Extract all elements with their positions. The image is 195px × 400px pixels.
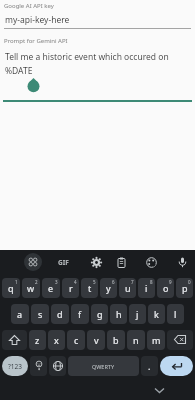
button[interactable]: c	[67, 330, 85, 350]
button[interactable]: x	[48, 330, 65, 350]
staticText: d	[57, 308, 63, 320]
staticText: h	[116, 308, 122, 320]
staticText: g	[97, 308, 103, 320]
staticText: o	[163, 282, 169, 294]
staticText: c	[74, 334, 79, 346]
staticText: 7	[131, 279, 134, 285]
staticText: 8	[150, 279, 153, 285]
button[interactable]: k	[148, 304, 165, 324]
staticText: y	[106, 282, 111, 294]
button[interactable]: w	[22, 278, 40, 298]
staticText: 0	[188, 279, 191, 285]
staticText: .	[148, 360, 151, 372]
staticText: 2	[35, 279, 38, 285]
button[interactable]	[49, 356, 66, 376]
button[interactable]: y	[100, 278, 117, 298]
staticText: k	[154, 308, 159, 320]
button[interactable]: my-api-key-here	[5, 14, 191, 26]
staticText: n	[133, 334, 139, 346]
button[interactable]: l	[167, 304, 184, 324]
button[interactable]: g	[91, 304, 108, 324]
staticText: i	[145, 282, 148, 294]
button[interactable]: r	[62, 278, 79, 298]
staticText: l	[174, 308, 177, 320]
button[interactable]	[154, 385, 165, 396]
button[interactable]: m	[147, 330, 165, 350]
staticText: Prompt for Gemini API	[4, 37, 68, 45]
button[interactable]: q	[2, 278, 20, 298]
button[interactable]	[167, 330, 193, 350]
button[interactable]: o	[157, 278, 174, 298]
button[interactable]: u	[119, 278, 136, 298]
staticText: a	[17, 308, 23, 320]
staticText: m	[152, 334, 161, 346]
staticText: r	[69, 282, 73, 294]
button[interactable]: v	[87, 330, 105, 350]
button[interactable]	[160, 356, 193, 376]
staticText: 9	[169, 279, 172, 285]
staticText: Tell me a historic event which occured o…	[5, 51, 169, 63]
button[interactable]: p	[176, 278, 193, 298]
staticText: %DATE	[5, 65, 33, 77]
button[interactable]	[30, 356, 47, 376]
button[interactable]	[2, 330, 27, 350]
staticText: Google AI API key	[4, 2, 54, 10]
staticText: 3	[55, 279, 58, 285]
staticText: s	[38, 308, 43, 320]
staticText: 6	[112, 279, 115, 285]
staticText: z	[35, 334, 40, 346]
button[interactable]: t	[81, 278, 98, 298]
button[interactable]	[116, 257, 127, 268]
staticText: q	[8, 282, 14, 294]
button[interactable]: ?123	[2, 356, 28, 376]
staticText: 1	[15, 279, 18, 285]
staticText: v	[94, 334, 99, 346]
button[interactable]	[91, 257, 102, 268]
button[interactable]: QWERTY	[68, 356, 139, 376]
button[interactable]: f	[71, 304, 89, 324]
button[interactable]: GIF	[58, 258, 69, 267]
button[interactable]: h	[110, 304, 127, 324]
staticText: x	[54, 334, 59, 346]
button[interactable]	[24, 253, 42, 271]
staticText: QWERTY	[92, 363, 115, 370]
staticText: 4	[74, 279, 77, 285]
staticText: w	[27, 282, 35, 294]
staticText: f	[78, 308, 82, 320]
button[interactable]	[146, 257, 157, 268]
staticText: p	[182, 282, 188, 294]
button[interactable]: e	[42, 278, 60, 298]
button[interactable]: b	[107, 330, 125, 350]
button[interactable]: n	[127, 330, 145, 350]
staticText: 5	[93, 279, 96, 285]
staticText: j	[136, 308, 139, 320]
staticText: ?123	[8, 362, 22, 371]
staticText: u	[125, 282, 131, 294]
button[interactable]: z	[29, 330, 46, 350]
button[interactable]	[177, 257, 188, 268]
button[interactable]: a	[11, 304, 29, 324]
button[interactable]: j	[129, 304, 146, 324]
button[interactable]: .	[141, 356, 158, 376]
staticText: b	[113, 334, 119, 346]
staticText: t	[88, 282, 92, 294]
button[interactable]: s	[31, 304, 49, 324]
staticText: e	[48, 282, 54, 294]
button[interactable]: i	[138, 278, 155, 298]
button[interactable]: d	[51, 304, 69, 324]
